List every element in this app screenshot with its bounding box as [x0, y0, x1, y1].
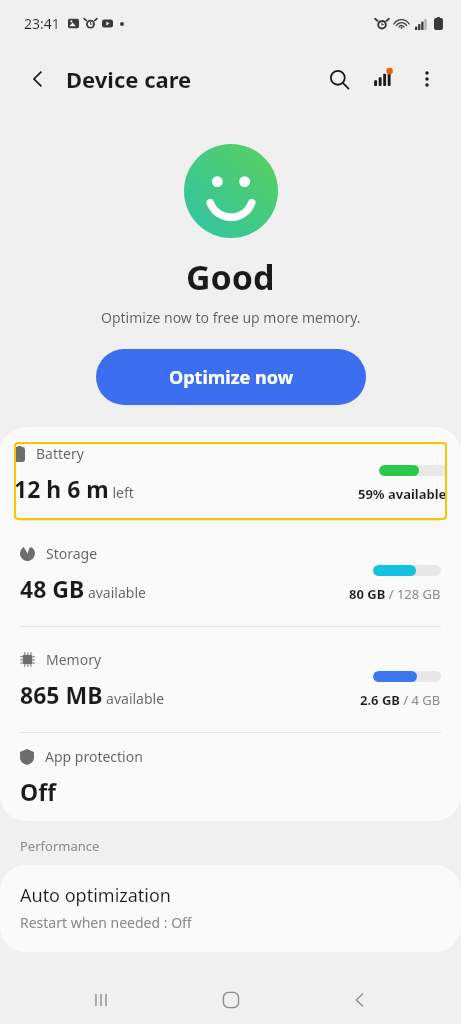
button[interactable]: More options [405, 57, 449, 101]
staticText: Off [20, 776, 56, 807]
button[interactable]: Optimize now [96, 349, 366, 405]
staticText: Storage [46, 544, 98, 563]
button[interactable]: Back [18, 59, 58, 99]
button[interactable]: Back [331, 976, 389, 1024]
staticText: Battery [36, 444, 84, 463]
button[interactable]: Usage statistics [361, 57, 405, 101]
staticText: Device care [66, 64, 192, 94]
staticText: Optimize now to free up more memory. [101, 308, 361, 327]
staticText: Auto optimization [20, 883, 171, 908]
staticText: Restart when needed : Off [20, 913, 192, 932]
staticText: Memory [46, 650, 102, 669]
button[interactable]: App protection [0, 733, 461, 821]
staticText: 59% available [358, 485, 447, 503]
button[interactable]: Home [202, 976, 260, 1024]
staticText: 2.6 GB / 4 GB [360, 691, 441, 709]
staticText: Optimize now [169, 365, 294, 390]
button[interactable]: Battery [0, 427, 461, 520]
button[interactable]: Search [317, 57, 361, 101]
staticText: App protection [45, 747, 143, 766]
staticText: 12 h 6 m left [14, 473, 134, 504]
button[interactable]: Auto optimization [0, 865, 461, 952]
staticText: 23:41 [24, 14, 60, 33]
button[interactable]: Recent apps [72, 976, 130, 1024]
staticText: 865 MB available [20, 679, 165, 710]
button[interactable]: Memory [0, 627, 461, 732]
staticText: Good [186, 254, 275, 300]
button[interactable]: Storage [0, 521, 461, 626]
staticText: 48 GB available [20, 573, 146, 604]
staticText: 80 GB / 128 GB [349, 585, 441, 603]
staticText: Performance [20, 837, 100, 855]
